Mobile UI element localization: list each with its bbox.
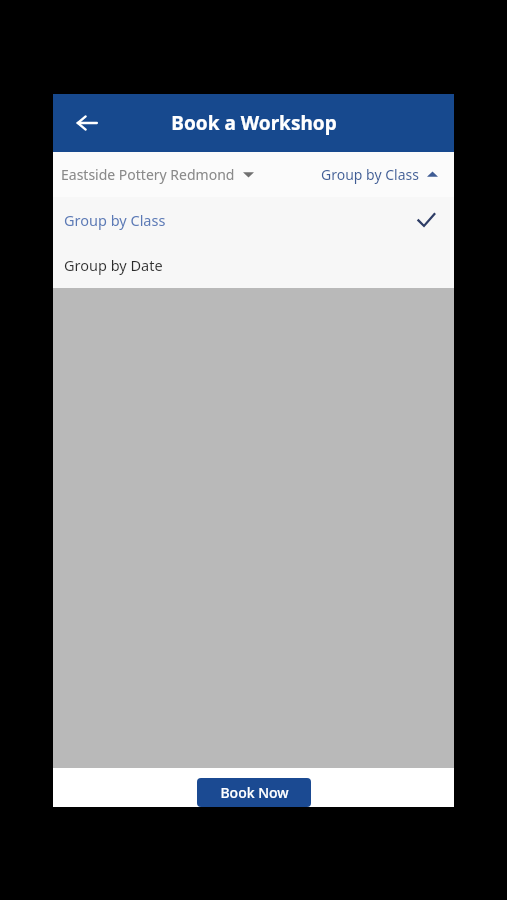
button[interactable]: Eastside Pottery Redmond: [61, 152, 254, 197]
staticText: Eastside Pottery Redmond: [61, 165, 235, 184]
button[interactable]: Group by Class: [53, 197, 454, 242]
staticText: Book a Workshop: [171, 110, 337, 136]
staticText: Book Now: [220, 783, 289, 802]
button[interactable]: Group by Date: [53, 242, 454, 288]
staticText: Group by Class: [64, 210, 166, 230]
button[interactable]: Book Now: [197, 778, 311, 807]
staticText: Group by Date: [64, 255, 163, 275]
button[interactable]: Back: [69, 105, 105, 141]
staticText: Group by Class: [321, 165, 419, 184]
button[interactable]: Group by Class: [321, 152, 438, 197]
